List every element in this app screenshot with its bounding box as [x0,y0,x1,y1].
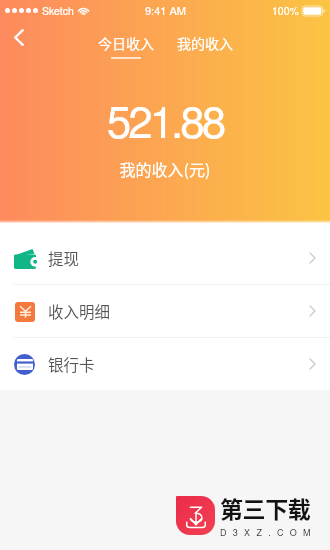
button[interactable]: 收入明细 [0,285,330,337]
staticText: 9:41 AM [145,2,186,18]
button[interactable]: 今日收入 [92,33,160,67]
staticText: Sketch [42,3,74,18]
staticText: 今日收入 [98,33,154,53]
staticText: 提现 [48,247,80,269]
button[interactable]: 银行卡 [0,338,330,390]
button[interactable]: Back [0,17,40,57]
staticText: 第三下载 [220,491,311,524]
staticText: 521.88 [0,87,330,150]
staticText: 100% [272,3,299,18]
staticText: 收入明细 [48,300,111,322]
staticText: D3XZ.COM [220,526,317,539]
button[interactable]: 提现 [0,232,330,284]
button[interactable]: 我的收入 [171,33,239,67]
staticText: 我的收入(元) [0,157,330,180]
staticText: 我的收入 [177,33,233,53]
staticText: 银行卡 [48,353,95,375]
